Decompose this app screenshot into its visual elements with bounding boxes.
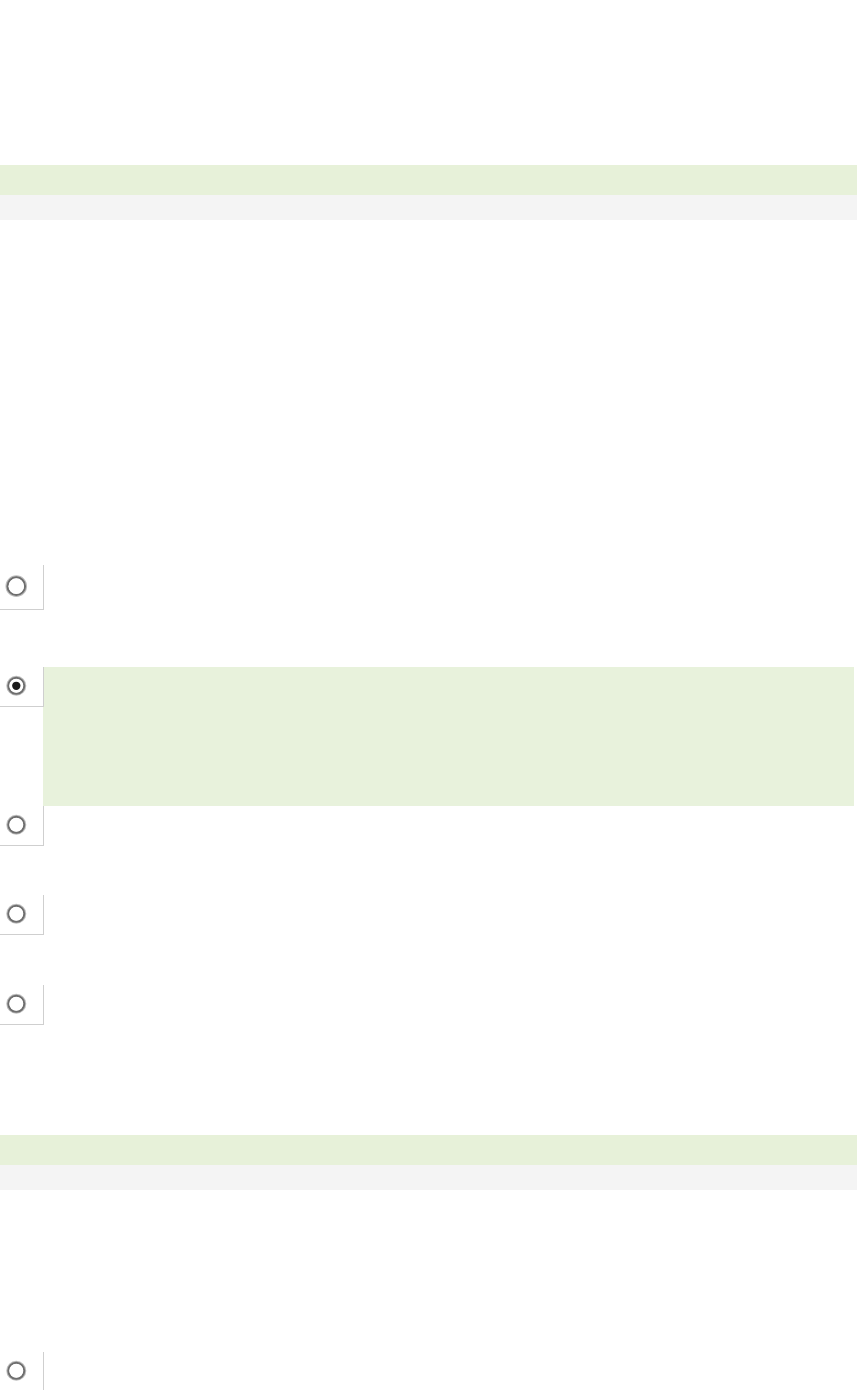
button[interactable]: Option 4 xyxy=(0,895,44,935)
button[interactable]: Option 5 xyxy=(0,985,44,1025)
button[interactable]: Option 6 xyxy=(0,1352,44,1390)
button[interactable]: Option 1 xyxy=(0,565,44,610)
button[interactable]: Option 3 xyxy=(0,806,44,846)
button[interactable]: Option 2 (selected) xyxy=(0,667,44,707)
